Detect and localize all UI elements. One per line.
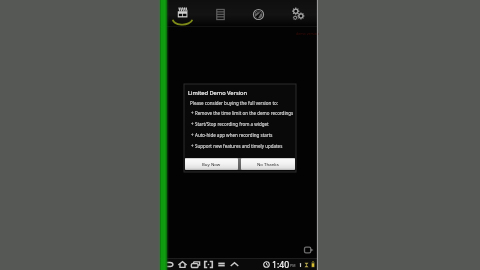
button[interactable]: Buy Now [185,158,238,170]
staticText: Limited Demo Version [188,89,248,97]
staticText: Please consider buying the full version … [190,100,279,106]
staticText: + [191,121,195,127]
staticText: 1:40 [272,259,290,270]
button[interactable]: No Thanks [241,158,295,170]
button[interactable]: Screenshot [202,259,215,270]
staticText: Support new features and timely updates [195,143,283,149]
button[interactable]: Record [163,2,201,26]
button[interactable]: Expand [228,259,241,270]
staticText: Auto-hide app when recording starts [195,132,273,138]
other: Screen cast [304,245,314,255]
button[interactable]: Back [163,259,176,270]
button[interactable]: Recordings list [201,2,239,26]
staticText: + [191,110,195,116]
staticText: + [191,132,195,138]
staticText: Start/Stop recording from a widget [195,121,269,127]
staticText: No Thanks [257,161,279,167]
staticText: PM [290,263,296,268]
button[interactable]: Home [176,259,189,270]
staticText: Remove the time limit on the demo record… [195,110,294,116]
staticText: demo version [296,31,320,36]
button[interactable]: Levels [239,2,278,26]
button[interactable]: Recent apps [189,259,202,270]
button[interactable]: Status bar [263,259,315,270]
staticText: Buy Now [202,161,221,167]
button[interactable]: Menu [215,259,228,270]
button[interactable]: Settings [278,2,317,26]
staticText: + [191,143,195,149]
